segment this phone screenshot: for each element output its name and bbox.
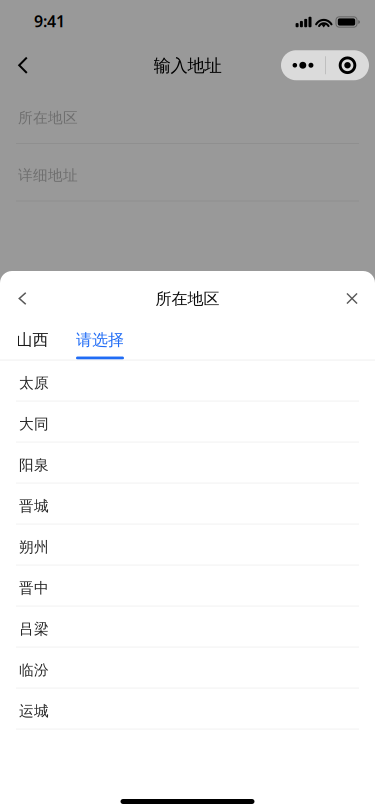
- staticText: 阳泉: [19, 456, 49, 474]
- staticText: 运城: [19, 702, 49, 720]
- button[interactable]: 请选择: [63, 319, 137, 359]
- button[interactable]: 山西: [2, 319, 63, 359]
- button[interactable]: 朔州: [0, 524, 375, 565]
- button[interactable]: 临汾: [0, 647, 375, 688]
- button[interactable]: 晋中: [0, 565, 375, 606]
- staticText: 山西: [16, 330, 48, 350]
- staticText: 太原: [19, 374, 49, 392]
- staticText: 朔州: [19, 538, 49, 556]
- button[interactable]: Back: [0, 271, 45, 319]
- button[interactable]: 详细地址: [0, 144, 375, 201]
- staticText: 所在地区: [18, 109, 78, 127]
- staticText: 临汾: [19, 661, 49, 679]
- button[interactable]: More: [281, 50, 325, 80]
- button[interactable]: 运城: [0, 688, 375, 729]
- button[interactable]: 大同: [0, 401, 375, 442]
- button[interactable]: 太原: [0, 360, 375, 401]
- button[interactable]: Back: [0, 40, 46, 88]
- staticText: 9:41: [34, 10, 65, 32]
- button[interactable]: Close mini program: [326, 50, 369, 80]
- staticText: 晋中: [19, 579, 49, 597]
- button[interactable]: 阳泉: [0, 442, 375, 483]
- staticText: 输入地址: [153, 55, 221, 76]
- staticText: 所在地区: [155, 289, 219, 309]
- button[interactable]: 所在地区: [0, 86, 375, 144]
- button[interactable]: 晋城: [0, 483, 375, 524]
- button[interactable]: 吕梁: [0, 606, 375, 647]
- staticText: 详细地址: [18, 166, 78, 184]
- staticText: 晋城: [19, 497, 49, 515]
- staticText: 大同: [19, 415, 49, 433]
- button[interactable]: Close: [329, 271, 375, 319]
- staticText: 请选择: [76, 330, 124, 350]
- staticText: 吕梁: [19, 620, 49, 638]
